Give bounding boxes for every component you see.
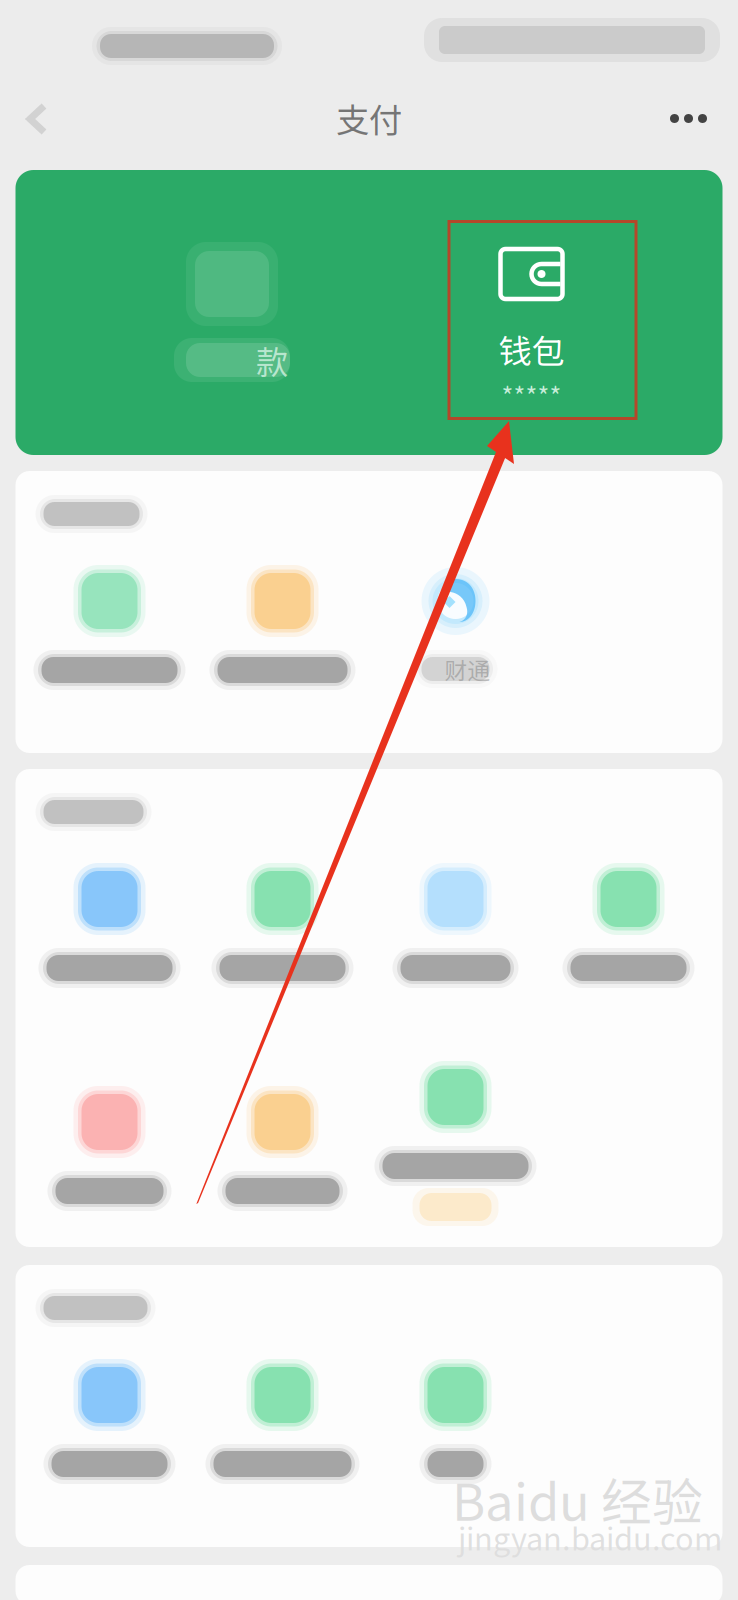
button[interactable]: 款 xyxy=(15,170,448,455)
button[interactable] xyxy=(23,1359,196,1499)
staticText: 款 xyxy=(256,337,288,383)
staticText: Baidu 经验 xyxy=(452,1462,703,1535)
button[interactable] xyxy=(369,1061,542,1251)
button[interactable] xyxy=(23,863,196,1003)
button[interactable] xyxy=(196,1359,369,1499)
button[interactable]: 钱包 xyxy=(448,170,614,455)
button[interactable] xyxy=(196,863,369,1003)
button[interactable] xyxy=(196,565,369,705)
button[interactable]: 返回 xyxy=(0,86,80,170)
staticText: 钱包 xyxy=(498,325,564,373)
button[interactable]: 更多 xyxy=(638,86,738,170)
staticText: jingyan.baidu.com xyxy=(458,1515,722,1559)
button[interactable] xyxy=(23,565,196,705)
button[interactable] xyxy=(369,863,542,1003)
staticText: ***** xyxy=(501,376,561,413)
button[interactable]: 财通 xyxy=(369,565,542,705)
staticText: 财通 xyxy=(444,653,490,685)
staticText: 支付 xyxy=(336,94,402,142)
button[interactable] xyxy=(369,1359,542,1499)
button[interactable] xyxy=(196,1086,369,1226)
button[interactable] xyxy=(542,863,715,1003)
button[interactable] xyxy=(23,1086,196,1226)
